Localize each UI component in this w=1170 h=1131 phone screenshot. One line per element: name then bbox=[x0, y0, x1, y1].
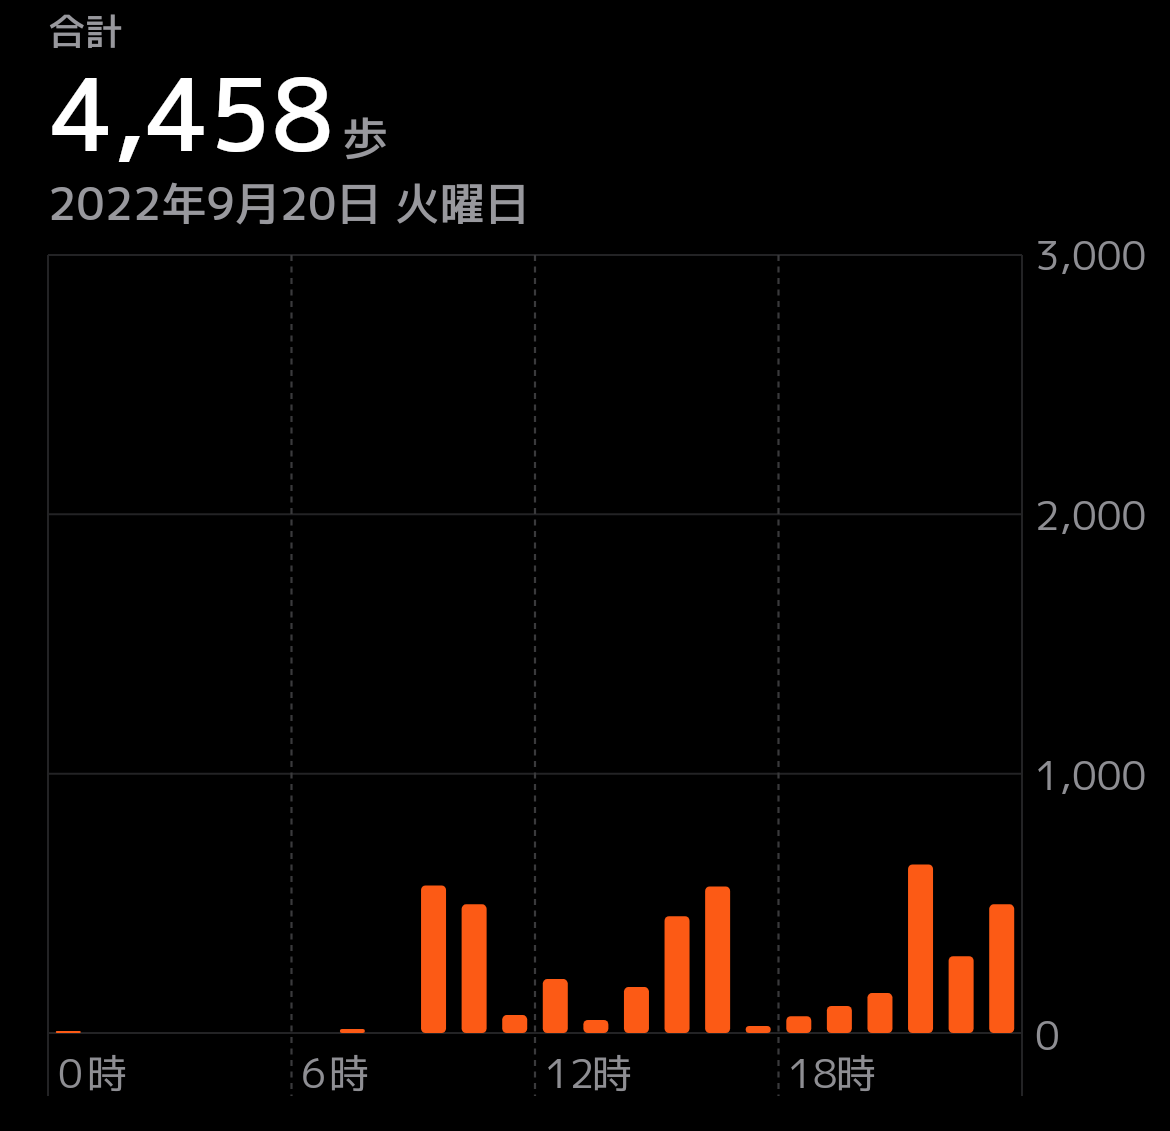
staticText: 時 bbox=[87, 1045, 127, 1101]
staticText: 歩 bbox=[342, 106, 388, 170]
staticText: 0 bbox=[58, 1045, 83, 1101]
staticText: 3,000 bbox=[1035, 227, 1147, 283]
staticText: 0 bbox=[1035, 1007, 1060, 1063]
staticText: 2022年9月20日 火曜日 bbox=[48, 172, 530, 235]
button[interactable]: 合計 bbox=[40, 0, 620, 236]
staticText: 12 bbox=[545, 1045, 595, 1101]
staticText: 時 bbox=[329, 1045, 369, 1101]
staticText: 2,000 bbox=[1035, 487, 1147, 543]
staticText: 1,000 bbox=[1035, 747, 1147, 803]
button[interactable]: Hourly step count bar chart bbox=[48, 253, 1022, 1097]
staticText: 4,458 bbox=[51, 45, 334, 183]
staticText: 時 bbox=[592, 1045, 632, 1101]
staticText: 合計 bbox=[48, 5, 122, 57]
staticText: 時 bbox=[836, 1045, 876, 1101]
staticText: 18 bbox=[788, 1045, 838, 1101]
staticText: 6 bbox=[301, 1045, 326, 1101]
